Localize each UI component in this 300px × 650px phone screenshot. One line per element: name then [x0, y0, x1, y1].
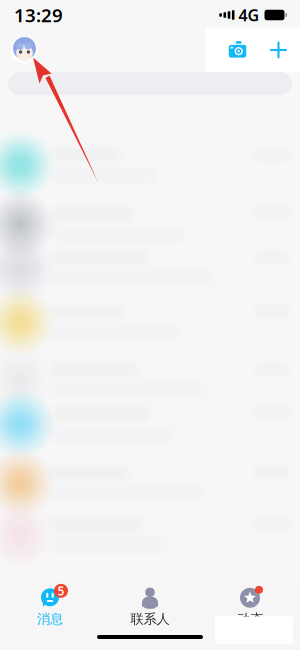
- staticText: 4G: [238, 4, 259, 26]
- button[interactable]: Search: [0, 70, 300, 100]
- staticText: 13:29: [14, 3, 63, 27]
- button[interactable]: 联系人: [100, 581, 200, 629]
- button[interactable]: 动态: [200, 581, 300, 629]
- staticText: 动态: [237, 611, 263, 627]
- staticText: 5: [57, 583, 64, 599]
- staticText: 消息: [37, 611, 63, 627]
- staticText: 联系人: [130, 611, 169, 627]
- button[interactable]: Camera: [217, 31, 258, 69]
- button[interactable]: Profile: [0, 28, 46, 71]
- button[interactable]: 5: [0, 581, 100, 629]
- button[interactable]: Add: [258, 31, 300, 69]
